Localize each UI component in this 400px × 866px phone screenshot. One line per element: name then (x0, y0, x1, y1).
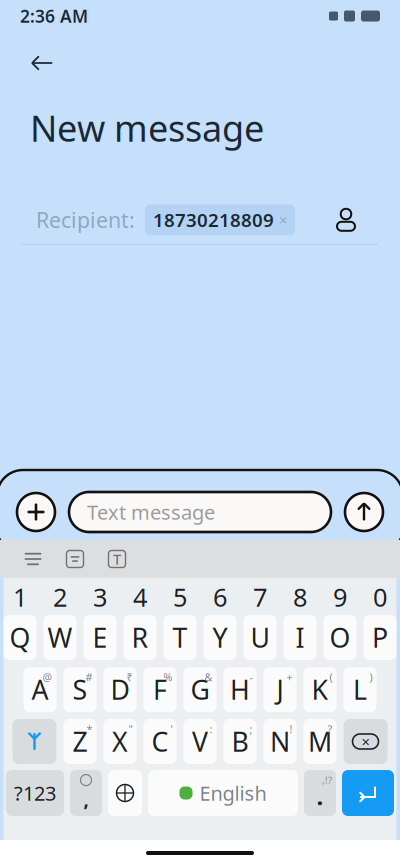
button[interactable]: ?123 (6, 770, 64, 816)
staticText: - (249, 670, 252, 684)
button[interactable]: Space (148, 770, 298, 816)
staticText: I (295, 620, 304, 655)
button[interactable]: J (263, 667, 296, 712)
button[interactable]: 5 (163, 584, 196, 610)
button[interactable]: K (303, 667, 336, 712)
staticText: 8 (293, 580, 307, 614)
button[interactable]: 1 (3, 584, 36, 610)
staticText: N (270, 724, 290, 759)
button[interactable]: E (83, 615, 116, 660)
button[interactable]: B (223, 719, 256, 764)
staticText: O (329, 620, 350, 655)
button[interactable]: 3 (83, 584, 116, 610)
staticText: 0 (373, 580, 387, 614)
staticText: 2 (53, 580, 67, 614)
button[interactable]: Emoji and comma (70, 770, 102, 816)
staticText: T (113, 549, 121, 569)
staticText: T (172, 620, 187, 655)
button[interactable]: O (323, 615, 356, 660)
staticText: ( (329, 670, 332, 684)
button[interactable]: H (223, 667, 256, 712)
button[interactable]: Period (304, 770, 336, 816)
button[interactable]: I (283, 615, 316, 660)
staticText: M (308, 724, 332, 759)
staticText: L (353, 672, 367, 707)
staticText: Z (72, 724, 87, 759)
staticText: ' (170, 722, 172, 736)
button[interactable]: Choose contact (328, 202, 364, 238)
button[interactable]: N (263, 719, 296, 764)
button[interactable]: G (183, 667, 216, 712)
button[interactable]: 9 (323, 584, 356, 610)
button[interactable]: D (103, 667, 136, 712)
button[interactable]: Backspace (343, 719, 387, 764)
button[interactable]: 8 (283, 584, 316, 610)
button[interactable]: Z (63, 719, 96, 764)
button[interactable]: X (103, 719, 136, 764)
staticText: Text message (87, 499, 215, 525)
button[interactable]: 7 (243, 584, 276, 610)
button[interactable]: T (163, 615, 196, 660)
button[interactable]: M (303, 719, 336, 764)
button[interactable]: Clipboard (62, 546, 88, 572)
button[interactable]: Enter (342, 770, 394, 816)
staticText: # (85, 670, 92, 684)
button[interactable]: Q (3, 615, 36, 660)
button[interactable]: A (23, 667, 56, 712)
button[interactable]: Switch language (108, 770, 142, 816)
button[interactable]: Y (203, 615, 236, 660)
staticText: × (279, 210, 287, 230)
staticText: 1 (13, 580, 27, 614)
staticText: ; (249, 722, 252, 736)
button[interactable]: P (363, 615, 396, 660)
staticText: 9 (333, 580, 347, 614)
staticText: + (286, 670, 292, 684)
button[interactable]: R (123, 615, 156, 660)
button[interactable]: Back (21, 44, 63, 82)
button[interactable]: L (343, 667, 376, 712)
staticText: P (372, 620, 388, 655)
button[interactable]: 6 (203, 584, 236, 610)
staticText: ? (327, 722, 332, 736)
staticText: H (230, 672, 250, 707)
button[interactable]: 4 (123, 584, 156, 610)
button[interactable]: W (43, 615, 76, 660)
button[interactable]: V (183, 719, 216, 764)
button[interactable]: 2 (43, 584, 76, 610)
button[interactable]: Text message (69, 492, 331, 532)
staticText: ?123 (14, 780, 56, 806)
staticText: @ (42, 670, 52, 684)
staticText: U (250, 620, 269, 655)
staticText: Y (212, 620, 227, 655)
staticText: ) (369, 670, 372, 684)
staticText: × (361, 732, 369, 751)
button[interactable]: Add attachment (17, 493, 55, 531)
staticText: : (209, 722, 212, 736)
staticText: E (92, 620, 107, 655)
button[interactable]: Shift (12, 719, 56, 764)
staticText: 5 (173, 580, 187, 614)
staticText: ,!? (322, 774, 332, 786)
staticText: ! (289, 722, 292, 736)
staticText: S (72, 672, 87, 707)
button[interactable]: Send (345, 493, 383, 531)
staticText: 6 (213, 580, 227, 614)
staticText: G (190, 672, 209, 707)
button[interactable]: 0 (363, 584, 396, 610)
button[interactable]: C (143, 719, 176, 764)
button[interactable]: Keyboard menu (20, 546, 46, 572)
staticText: * (86, 722, 92, 736)
staticText: K (311, 672, 328, 707)
staticText: & (204, 670, 212, 684)
staticText: D (110, 672, 129, 707)
staticText: X (112, 724, 128, 759)
staticText: 3 (93, 580, 107, 614)
staticText: 7 (253, 580, 267, 614)
staticText: B (231, 724, 248, 759)
button[interactable]: U (243, 615, 276, 660)
staticText: R (131, 620, 148, 655)
button[interactable]: S (63, 667, 96, 712)
staticText: F (153, 672, 167, 707)
button[interactable]: Text formatting (104, 546, 130, 572)
button[interactable]: F (143, 667, 176, 712)
